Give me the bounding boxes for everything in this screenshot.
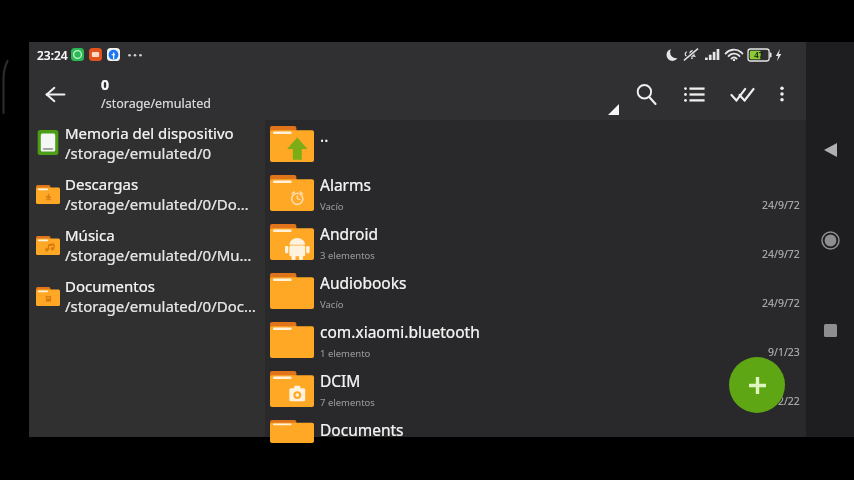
- staticText: Descargas: [65, 174, 139, 194]
- button[interactable]: Descargas: [29, 171, 265, 222]
- button[interactable]: Select all: [721, 73, 763, 115]
- staticText: Memoria del dispositivo: [65, 123, 234, 143]
- button[interactable]: DCIM: [265, 365, 854, 414]
- staticText: /storage/emulated/0/Mu…: [65, 245, 252, 265]
- staticText: /storage/emulated/0/Doc…: [65, 296, 256, 316]
- staticText: com.xiaomi.bluetooth: [320, 321, 480, 342]
- staticText: 0: [101, 75, 110, 94]
- button[interactable]: View mode: [673, 73, 715, 115]
- staticText: Alarms: [320, 174, 371, 195]
- staticText: Android: [320, 223, 379, 244]
- staticText: 9/1/23: [768, 345, 800, 359]
- button[interactable]: Home: [813, 223, 847, 257]
- button[interactable]: Search: [625, 73, 667, 115]
- staticText: 24/9/72: [762, 247, 800, 261]
- staticText: Documents: [320, 419, 404, 440]
- staticText: Documentos: [65, 276, 155, 296]
- staticText: /storage/emulated: [101, 95, 211, 112]
- staticText: ..: [320, 125, 329, 146]
- button[interactable]: Recent apps: [813, 313, 847, 347]
- button[interactable]: Alarms: [265, 169, 854, 218]
- staticText: 2/2/22: [768, 394, 800, 408]
- staticText: Audiobooks: [320, 272, 407, 293]
- button[interactable]: Back: [29, 68, 81, 120]
- button[interactable]: Documents: [265, 414, 854, 437]
- staticText: 3 elementos: [320, 249, 375, 262]
- button[interactable]: Documentos: [29, 273, 265, 324]
- button[interactable]: More options: [764, 76, 800, 112]
- staticText: 1 elemento: [320, 347, 371, 360]
- staticText: /storage/emulated/0/Do…: [65, 194, 249, 214]
- staticText: /storage/emulated/0: [65, 143, 212, 163]
- button[interactable]: Back: [813, 133, 847, 167]
- button[interactable]: New: [729, 357, 785, 413]
- button[interactable]: Música: [29, 222, 265, 273]
- staticText: Música: [65, 225, 115, 245]
- staticText: 24/9/72: [762, 198, 800, 212]
- button[interactable]: ..: [265, 120, 854, 169]
- staticText: Vacío: [320, 200, 344, 213]
- button[interactable]: Audiobooks: [265, 267, 854, 316]
- staticText: 47: [754, 49, 764, 61]
- button[interactable]: com.xiaomi.bluetooth: [265, 316, 854, 365]
- staticText: DCIM: [320, 370, 361, 391]
- staticText: 23:24: [37, 47, 68, 63]
- button[interactable]: Android: [265, 218, 854, 267]
- staticText: 24/9/72: [762, 296, 800, 310]
- staticText: 7 elementos: [320, 396, 375, 409]
- staticText: Vacío: [320, 298, 344, 311]
- button[interactable]: Memoria del dispositivo: [29, 120, 265, 171]
